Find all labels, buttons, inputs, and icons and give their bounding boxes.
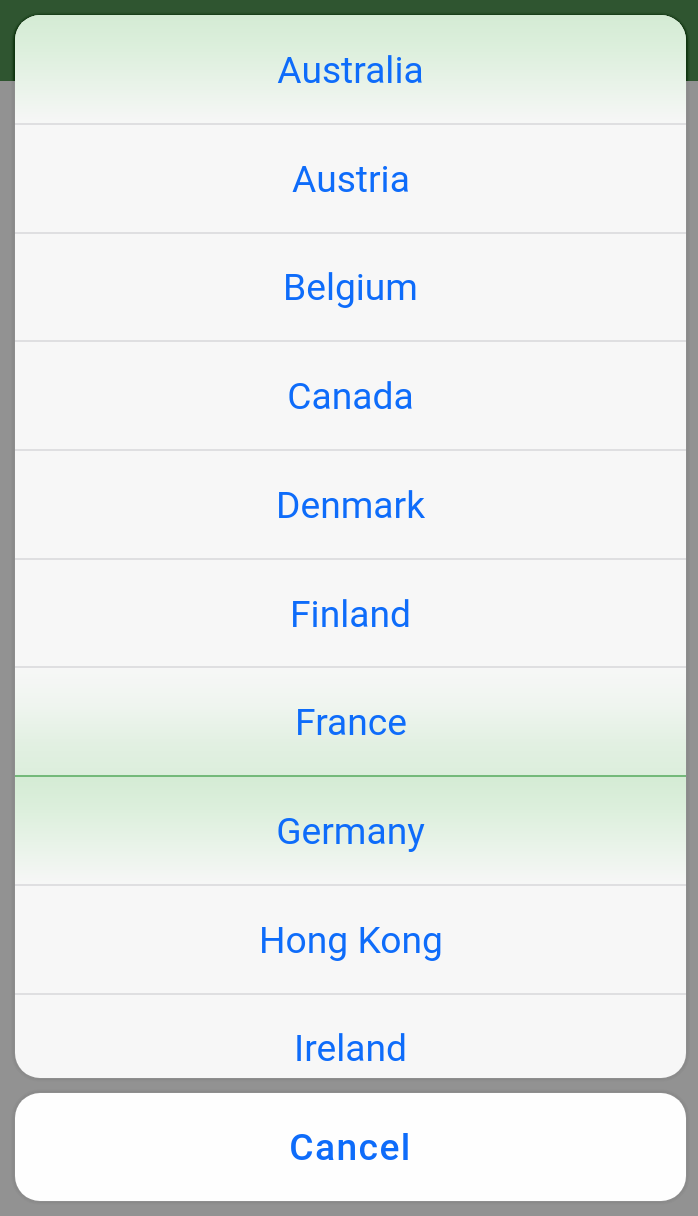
button[interactable]: Austria: [15, 124, 686, 233]
button[interactable]: Canada: [15, 341, 686, 450]
button[interactable]: Australia: [15, 15, 686, 124]
staticText: Hong Kong: [259, 918, 443, 962]
staticText: Denmark: [276, 483, 425, 527]
button[interactable]: Ireland: [15, 993, 686, 1078]
button[interactable]: Germany: [15, 776, 686, 885]
staticText: Germany: [276, 809, 425, 853]
button[interactable]: France: [15, 667, 686, 776]
staticText: Austria: [292, 157, 410, 201]
staticText: Cancel: [289, 1125, 412, 1169]
button[interactable]: Belgium: [15, 232, 686, 341]
staticText: Finland: [290, 592, 411, 636]
staticText: Ireland: [294, 1026, 407, 1070]
button[interactable]: Finland: [15, 559, 686, 668]
staticText: Australia: [277, 48, 424, 92]
staticText: Canada: [287, 374, 414, 418]
button[interactable]: Cancel: [15, 1093, 686, 1201]
staticText: France: [295, 700, 407, 744]
button[interactable]: Denmark: [15, 450, 686, 559]
staticText: Belgium: [283, 265, 418, 309]
button[interactable]: Hong Kong: [15, 885, 686, 994]
